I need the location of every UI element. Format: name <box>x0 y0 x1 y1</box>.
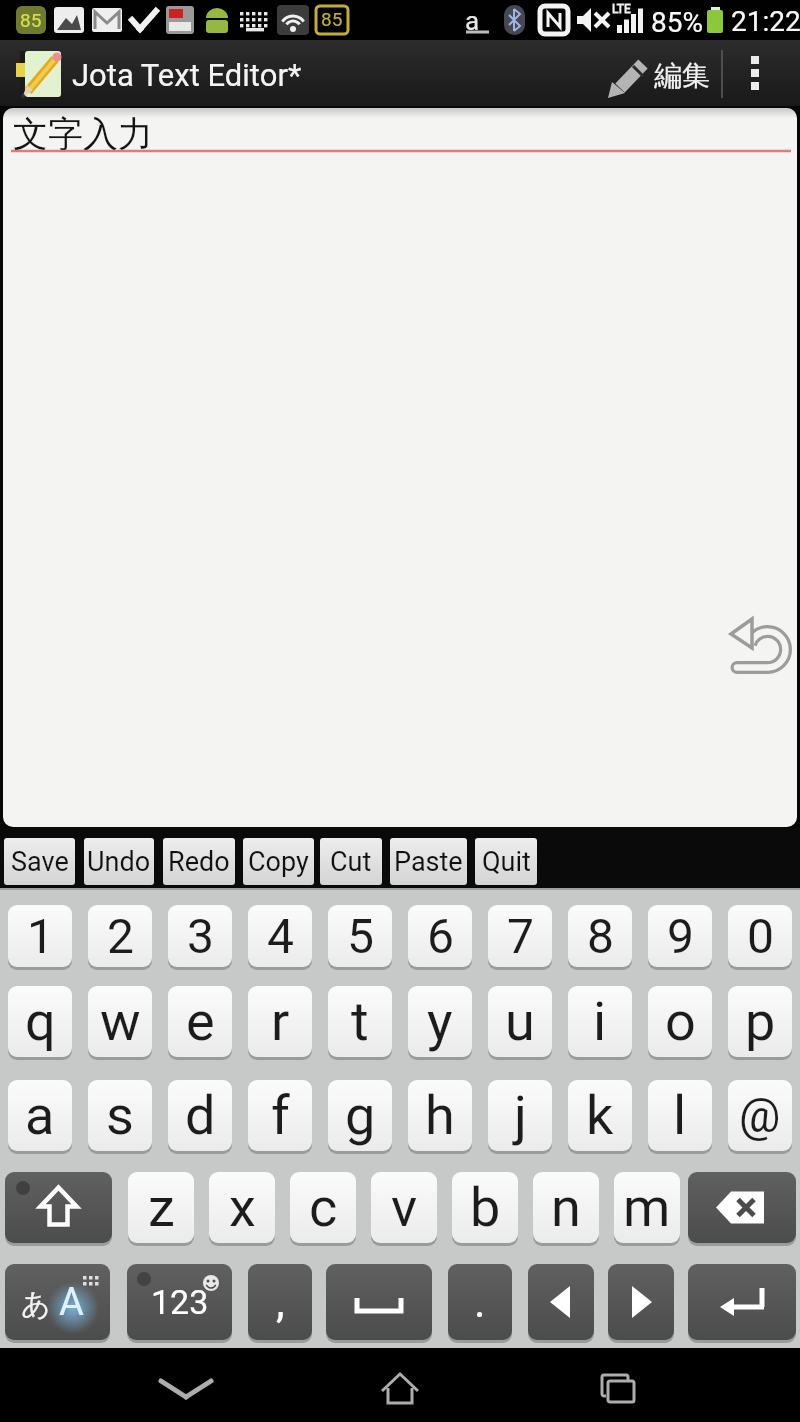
button[interactable]: z <box>128 1172 194 1243</box>
staticText: t <box>351 990 369 1053</box>
button[interactable] <box>688 1264 796 1340</box>
button[interactable]: 4 <box>248 905 312 967</box>
button[interactable]: r <box>248 986 312 1057</box>
button[interactable]: Save <box>4 838 75 885</box>
button[interactable] <box>578 1360 658 1416</box>
staticText: u <box>505 990 535 1053</box>
button[interactable]: c <box>290 1172 356 1243</box>
staticText: o <box>665 990 696 1053</box>
button[interactable]: q <box>8 986 72 1057</box>
button[interactable]: y <box>408 986 472 1057</box>
button[interactable]: Redo <box>163 838 235 885</box>
button[interactable]: d <box>168 1080 232 1151</box>
button[interactable]: 1 <box>8 905 72 967</box>
button[interactable]: a <box>8 1080 72 1151</box>
staticText: Save <box>11 846 69 878</box>
button[interactable]: 2 <box>88 905 152 967</box>
staticText: , <box>276 1276 285 1328</box>
staticText: あ <box>21 1286 51 1323</box>
button[interactable] <box>360 1360 440 1416</box>
button[interactable]: Copy <box>243 838 314 885</box>
staticText: 85 <box>321 8 343 30</box>
button[interactable]: u <box>488 986 552 1057</box>
staticText: Undo <box>87 846 151 878</box>
staticText: Jota Text Editor* <box>72 57 302 93</box>
staticText: Copy <box>248 846 309 878</box>
button[interactable]: n <box>533 1172 599 1243</box>
staticText: 5 <box>347 908 374 964</box>
staticText: 2 <box>107 908 134 964</box>
staticText: j <box>514 1084 527 1147</box>
button[interactable]: s <box>88 1080 152 1151</box>
staticText: w <box>100 990 141 1053</box>
button[interactable]: p <box>728 986 792 1057</box>
button[interactable]: Paste <box>390 838 467 885</box>
button[interactable]: 5 <box>328 905 392 967</box>
button[interactable]: i <box>568 986 632 1057</box>
button[interactable]: h <box>408 1080 472 1151</box>
button[interactable]: 123 <box>127 1264 232 1340</box>
button[interactable] <box>326 1264 432 1340</box>
staticText: 8 <box>587 908 614 964</box>
button[interactable]: f <box>248 1080 312 1151</box>
button[interactable]: w <box>88 986 152 1057</box>
button[interactable]: 9 <box>648 905 712 967</box>
button[interactable]: Quit <box>475 838 537 885</box>
button[interactable]: 8 <box>568 905 632 967</box>
staticText: i <box>593 990 607 1053</box>
button[interactable]: 0 <box>728 905 792 967</box>
button[interactable]: @ <box>728 1080 792 1151</box>
button[interactable]: v <box>371 1172 437 1243</box>
button[interactable] <box>688 1172 796 1243</box>
staticText: m <box>623 1176 671 1239</box>
button[interactable] <box>528 1264 594 1340</box>
staticText: 9 <box>667 908 694 964</box>
button[interactable]: t <box>328 986 392 1057</box>
staticText: 4 <box>267 908 294 964</box>
staticText: s <box>106 1084 134 1147</box>
button[interactable]: . <box>448 1264 512 1340</box>
staticText: 85 <box>20 9 42 31</box>
button[interactable]: g <box>328 1080 392 1151</box>
button[interactable]: Undo <box>84 838 154 885</box>
button[interactable]: 7 <box>488 905 552 967</box>
staticText: d <box>185 1084 216 1147</box>
staticText: v <box>391 1176 418 1239</box>
staticText: g <box>345 1084 376 1147</box>
button[interactable] <box>608 1264 674 1340</box>
staticText: c <box>309 1176 338 1239</box>
button[interactable]: e <box>168 986 232 1057</box>
button[interactable]: 3 <box>168 905 232 967</box>
button[interactable] <box>3 108 797 827</box>
button[interactable] <box>5 1172 112 1243</box>
staticText: 3 <box>187 908 214 964</box>
button[interactable]: 6 <box>408 905 472 967</box>
staticText: 123 <box>151 1282 209 1322</box>
staticText: z <box>148 1176 175 1239</box>
staticText: x <box>229 1176 256 1239</box>
button[interactable]: Cut <box>320 838 382 885</box>
staticText: @ <box>739 1089 781 1143</box>
button[interactable]: b <box>452 1172 518 1243</box>
button[interactable] <box>146 1360 226 1416</box>
button[interactable]: j <box>488 1080 552 1151</box>
staticText: 6 <box>427 908 454 964</box>
staticText: LTE <box>612 2 631 16</box>
staticText: 7 <box>507 908 534 964</box>
staticText: . <box>474 1276 486 1328</box>
staticText: Redo <box>168 846 230 878</box>
button[interactable]: k <box>568 1080 632 1151</box>
button[interactable] <box>734 44 778 102</box>
button[interactable]: あ <box>5 1264 110 1340</box>
staticText: Cut <box>330 846 372 878</box>
button[interactable]: m <box>614 1172 680 1243</box>
button[interactable] <box>598 44 716 102</box>
staticText: 85% <box>651 6 703 36</box>
staticText: b <box>470 1176 501 1239</box>
button[interactable]: , <box>248 1264 312 1340</box>
button[interactable]: x <box>209 1172 275 1243</box>
staticText: A <box>59 1280 84 1325</box>
button[interactable]: o <box>648 986 712 1057</box>
button[interactable]: l <box>648 1080 712 1151</box>
staticText: 21:22 <box>731 5 800 37</box>
